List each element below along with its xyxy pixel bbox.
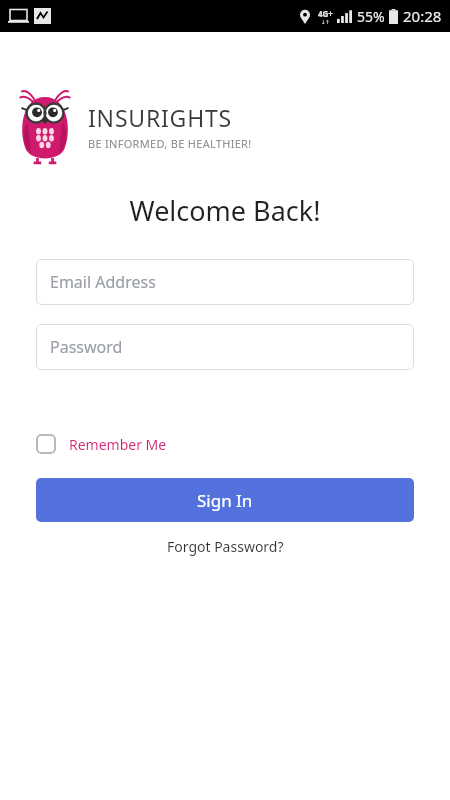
staticText: Email Address xyxy=(50,271,156,293)
button[interactable]: Password xyxy=(36,324,414,370)
staticText: INSURIGHTS xyxy=(88,102,233,133)
staticText: Welcome Back! xyxy=(0,192,450,229)
staticText: Sign In xyxy=(197,489,253,512)
button[interactable]: Email Address xyxy=(36,259,414,305)
staticText: Password xyxy=(50,336,123,358)
staticText: 55% xyxy=(357,7,385,26)
staticText: 4G+ xyxy=(318,8,333,19)
staticText: 20:28 xyxy=(403,6,442,26)
staticText: Forgot Password? xyxy=(167,537,284,556)
other: Insurights owl logo xyxy=(18,88,72,164)
button[interactable]: Remember Me xyxy=(36,432,177,456)
staticText: Remember Me xyxy=(69,435,167,454)
button[interactable]: Sign In xyxy=(36,478,414,522)
staticText: BE INFORMED, BE HEALTHIER! xyxy=(88,136,252,151)
staticText: ↓↑ xyxy=(321,19,330,25)
button[interactable]: Forgot Password? xyxy=(159,534,292,559)
